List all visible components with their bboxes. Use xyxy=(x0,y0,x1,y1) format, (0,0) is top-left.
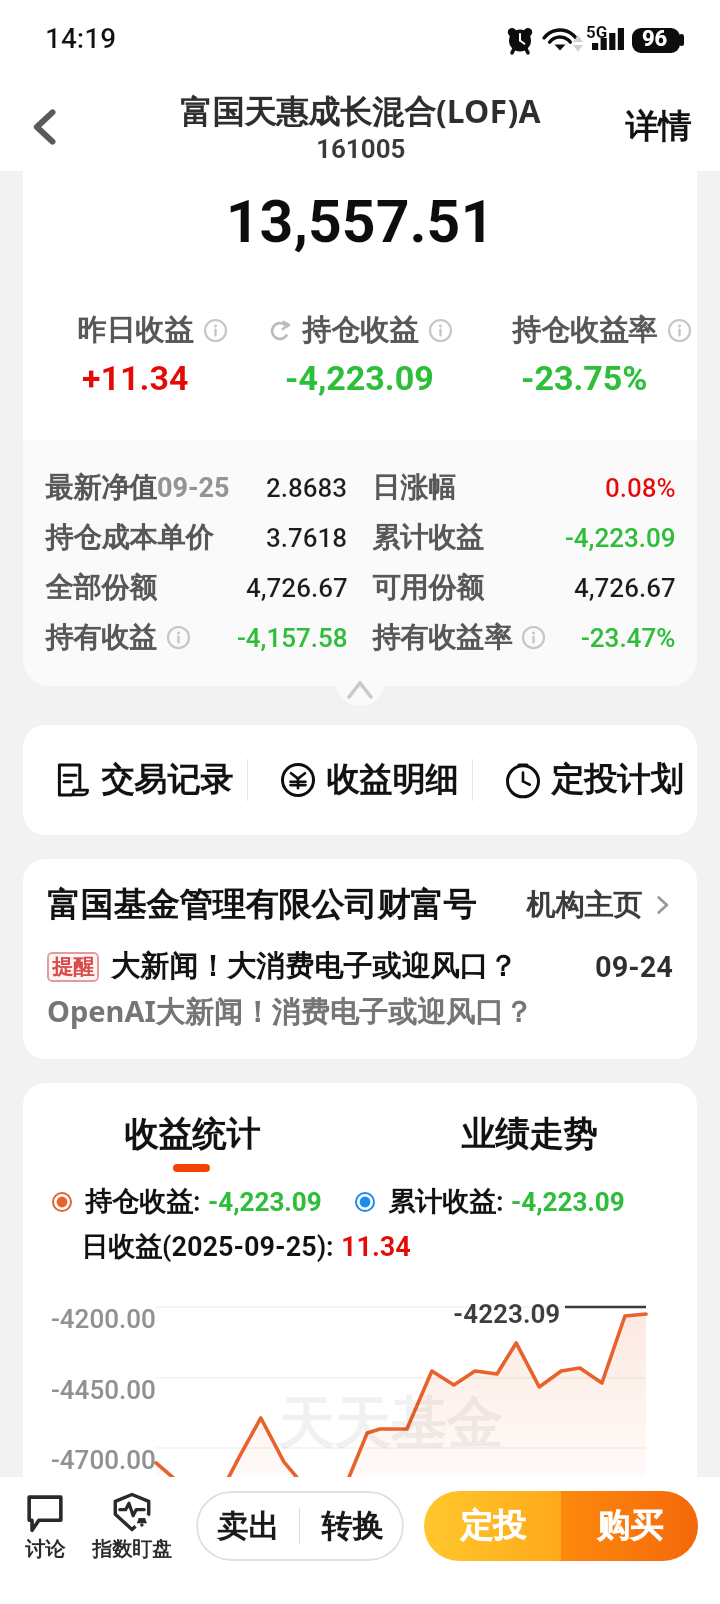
staticText: OpenAI大新闻！消费电子或迎风口？ xyxy=(47,991,533,1031)
staticText: 收益统计 xyxy=(124,1113,260,1156)
staticText: 提醒 xyxy=(52,954,94,980)
staticText: 11.34 xyxy=(341,1231,411,1263)
staticText: : xyxy=(193,1186,208,1218)
staticText: 0.08% xyxy=(605,473,676,503)
staticText: 09-24 xyxy=(595,950,673,984)
staticText: 累计收益 xyxy=(388,1185,496,1219)
button[interactable]: 卖出 xyxy=(196,1491,299,1561)
staticText: 96 xyxy=(642,26,668,52)
staticText: 可用份额 xyxy=(372,570,484,605)
staticText: 详情 xyxy=(625,106,691,148)
button[interactable]: 转换 xyxy=(300,1491,404,1561)
button[interactable]: Collapse xyxy=(335,662,385,706)
staticText: 持仓收益率 xyxy=(512,312,657,349)
staticText: 持有收益 xyxy=(45,620,157,655)
staticText: -4200.00 xyxy=(51,1304,156,1334)
staticText: -23.47% xyxy=(581,623,676,653)
button[interactable]: 购买 xyxy=(561,1491,698,1561)
staticText: 讨论 xyxy=(25,1537,65,1562)
staticText: 富国天惠成长混合(LOF)A xyxy=(180,89,541,133)
button[interactable]: 持仓收益率 xyxy=(472,312,697,398)
button[interactable]: 收益明细 xyxy=(248,725,472,835)
staticText: -4700.00 xyxy=(51,1445,156,1475)
staticText: 卖出 xyxy=(217,1507,279,1546)
staticText: 富国基金管理有限公司财富号 xyxy=(47,884,476,926)
staticText: -4,223.09 xyxy=(565,523,676,553)
staticText: 4,726.67 xyxy=(246,573,348,603)
button[interactable]: 交易记录 xyxy=(23,725,247,835)
staticText: -4,223.09 xyxy=(285,358,434,398)
staticText: 持仓成本单价 xyxy=(45,520,213,555)
staticText: 09-25 xyxy=(157,472,230,504)
button[interactable]: 定投 xyxy=(424,1491,561,1561)
staticText: 定投 xyxy=(460,1505,526,1547)
button[interactable]: 富国基金管理有限公司财富号 xyxy=(47,884,673,926)
staticText: -4,223.09 xyxy=(208,1187,322,1217)
button[interactable]: 业绩走势 xyxy=(461,1113,597,1156)
button[interactable]: 持仓收益 xyxy=(247,312,472,398)
staticText: 13,557.51 xyxy=(23,187,697,256)
staticText: +11.34 xyxy=(82,358,189,398)
staticText: 大新闻！大消费电子或迎风口？ xyxy=(111,948,517,985)
button[interactable]: 收益统计 xyxy=(124,1113,260,1156)
staticText: 5G xyxy=(586,22,608,42)
button[interactable]: 指数盯盘 xyxy=(92,1493,172,1562)
button[interactable]: 详情 xyxy=(621,98,695,156)
staticText: 业绩走势 xyxy=(461,1113,597,1156)
staticText: -4,157.58 xyxy=(237,623,348,653)
button[interactable]: 定投计划 xyxy=(473,725,697,835)
staticText: 最新净值 xyxy=(45,470,157,505)
button[interactable]: 提醒 xyxy=(47,948,673,985)
staticText: -4,223.09 xyxy=(511,1187,625,1217)
staticText: 累计收益 xyxy=(372,520,484,555)
staticText: 指数盯盘 xyxy=(92,1537,172,1562)
staticText: 收益明细 xyxy=(326,759,458,801)
staticText: 4,726.67 xyxy=(574,573,676,603)
staticText: 日涨幅 xyxy=(372,470,456,505)
staticText: 天天基金 xyxy=(278,1389,502,1460)
button[interactable]: 讨论 xyxy=(13,1495,77,1562)
staticText: 持有收益率 xyxy=(372,620,512,655)
staticText: 定投计划 xyxy=(551,759,683,801)
staticText: -4450.00 xyxy=(51,1375,156,1405)
staticText: 昨日收益 xyxy=(77,312,193,349)
staticText: 转换 xyxy=(321,1507,383,1546)
staticText: 交易记录 xyxy=(101,759,233,801)
staticText: 持仓收益 xyxy=(302,312,418,349)
staticText: 2.8683 xyxy=(266,473,348,503)
staticText: 全部份额 xyxy=(45,570,157,605)
staticText: (2025-09-25): xyxy=(162,1231,341,1263)
staticText: : xyxy=(496,1186,511,1218)
button[interactable]: 昨日收益 xyxy=(23,312,247,398)
staticText: 14:19 xyxy=(45,22,117,55)
staticText: 161005 xyxy=(316,134,406,164)
staticText: -23.75% xyxy=(521,358,648,398)
staticText: 机构主页 xyxy=(526,887,642,924)
staticText: 日收益 xyxy=(81,1230,162,1264)
staticText: -4223.09 xyxy=(453,1299,561,1329)
staticText: 3.7618 xyxy=(266,523,348,553)
button[interactable]: Back xyxy=(16,96,74,154)
staticText: 购买 xyxy=(597,1505,663,1547)
staticText: 持仓收益 xyxy=(85,1185,193,1219)
